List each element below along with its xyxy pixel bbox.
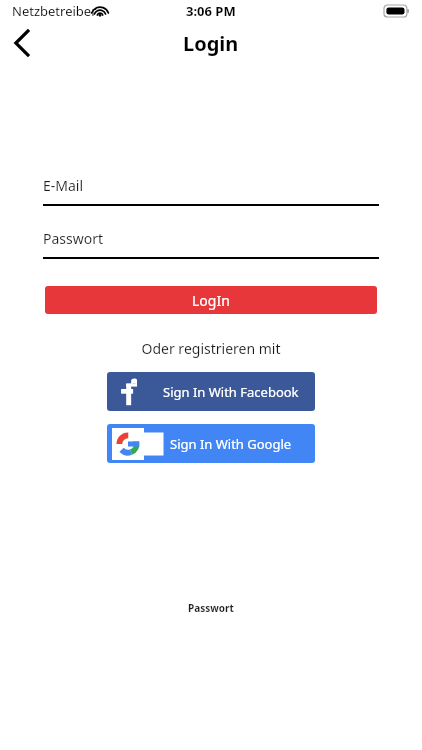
staticText: Oder registrieren mit	[0, 339, 422, 358]
button[interactable]: Sign In With Google	[107, 424, 315, 463]
staticText: Netzbetreiber	[12, 2, 97, 20]
staticText: E-Mail	[43, 176, 84, 195]
button[interactable]: E-Mail	[43, 176, 379, 206]
staticText: Passwort	[43, 229, 104, 248]
staticText: Login	[183, 30, 239, 57]
staticText: Passwort	[0, 601, 422, 615]
staticText: Sign In With Google	[170, 435, 292, 453]
staticText: LogIn	[192, 291, 230, 310]
button[interactable]: Passwort	[43, 229, 379, 259]
button[interactable]: LogIn	[45, 286, 377, 314]
button[interactable]: Back	[0, 22, 44, 64]
staticText: 3:06 PM	[186, 2, 236, 20]
staticText: Sign In With Facebook	[163, 383, 299, 401]
button[interactable]: Sign In With Facebook	[107, 372, 315, 411]
